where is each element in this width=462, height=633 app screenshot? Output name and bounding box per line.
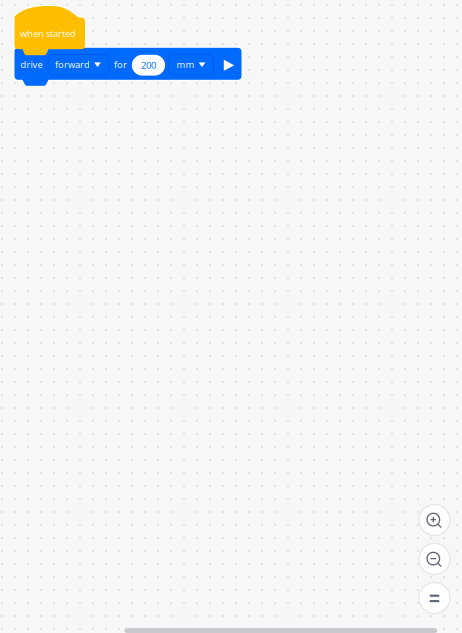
staticText: mm bbox=[177, 58, 195, 71]
button[interactable]: Zoom in bbox=[419, 504, 450, 535]
staticText: drive bbox=[21, 58, 43, 71]
button[interactable]: mm bbox=[169, 55, 214, 75]
button[interactable]: Reset zoom bbox=[419, 582, 450, 613]
staticText: 200 bbox=[141, 59, 156, 71]
staticText: for bbox=[114, 58, 127, 71]
staticText: when started bbox=[20, 27, 76, 40]
button[interactable]: drive bbox=[0, 0, 462, 633]
staticText: forward bbox=[55, 58, 90, 71]
button[interactable]: forward bbox=[48, 55, 109, 75]
button[interactable]: Zoom out bbox=[419, 543, 450, 574]
